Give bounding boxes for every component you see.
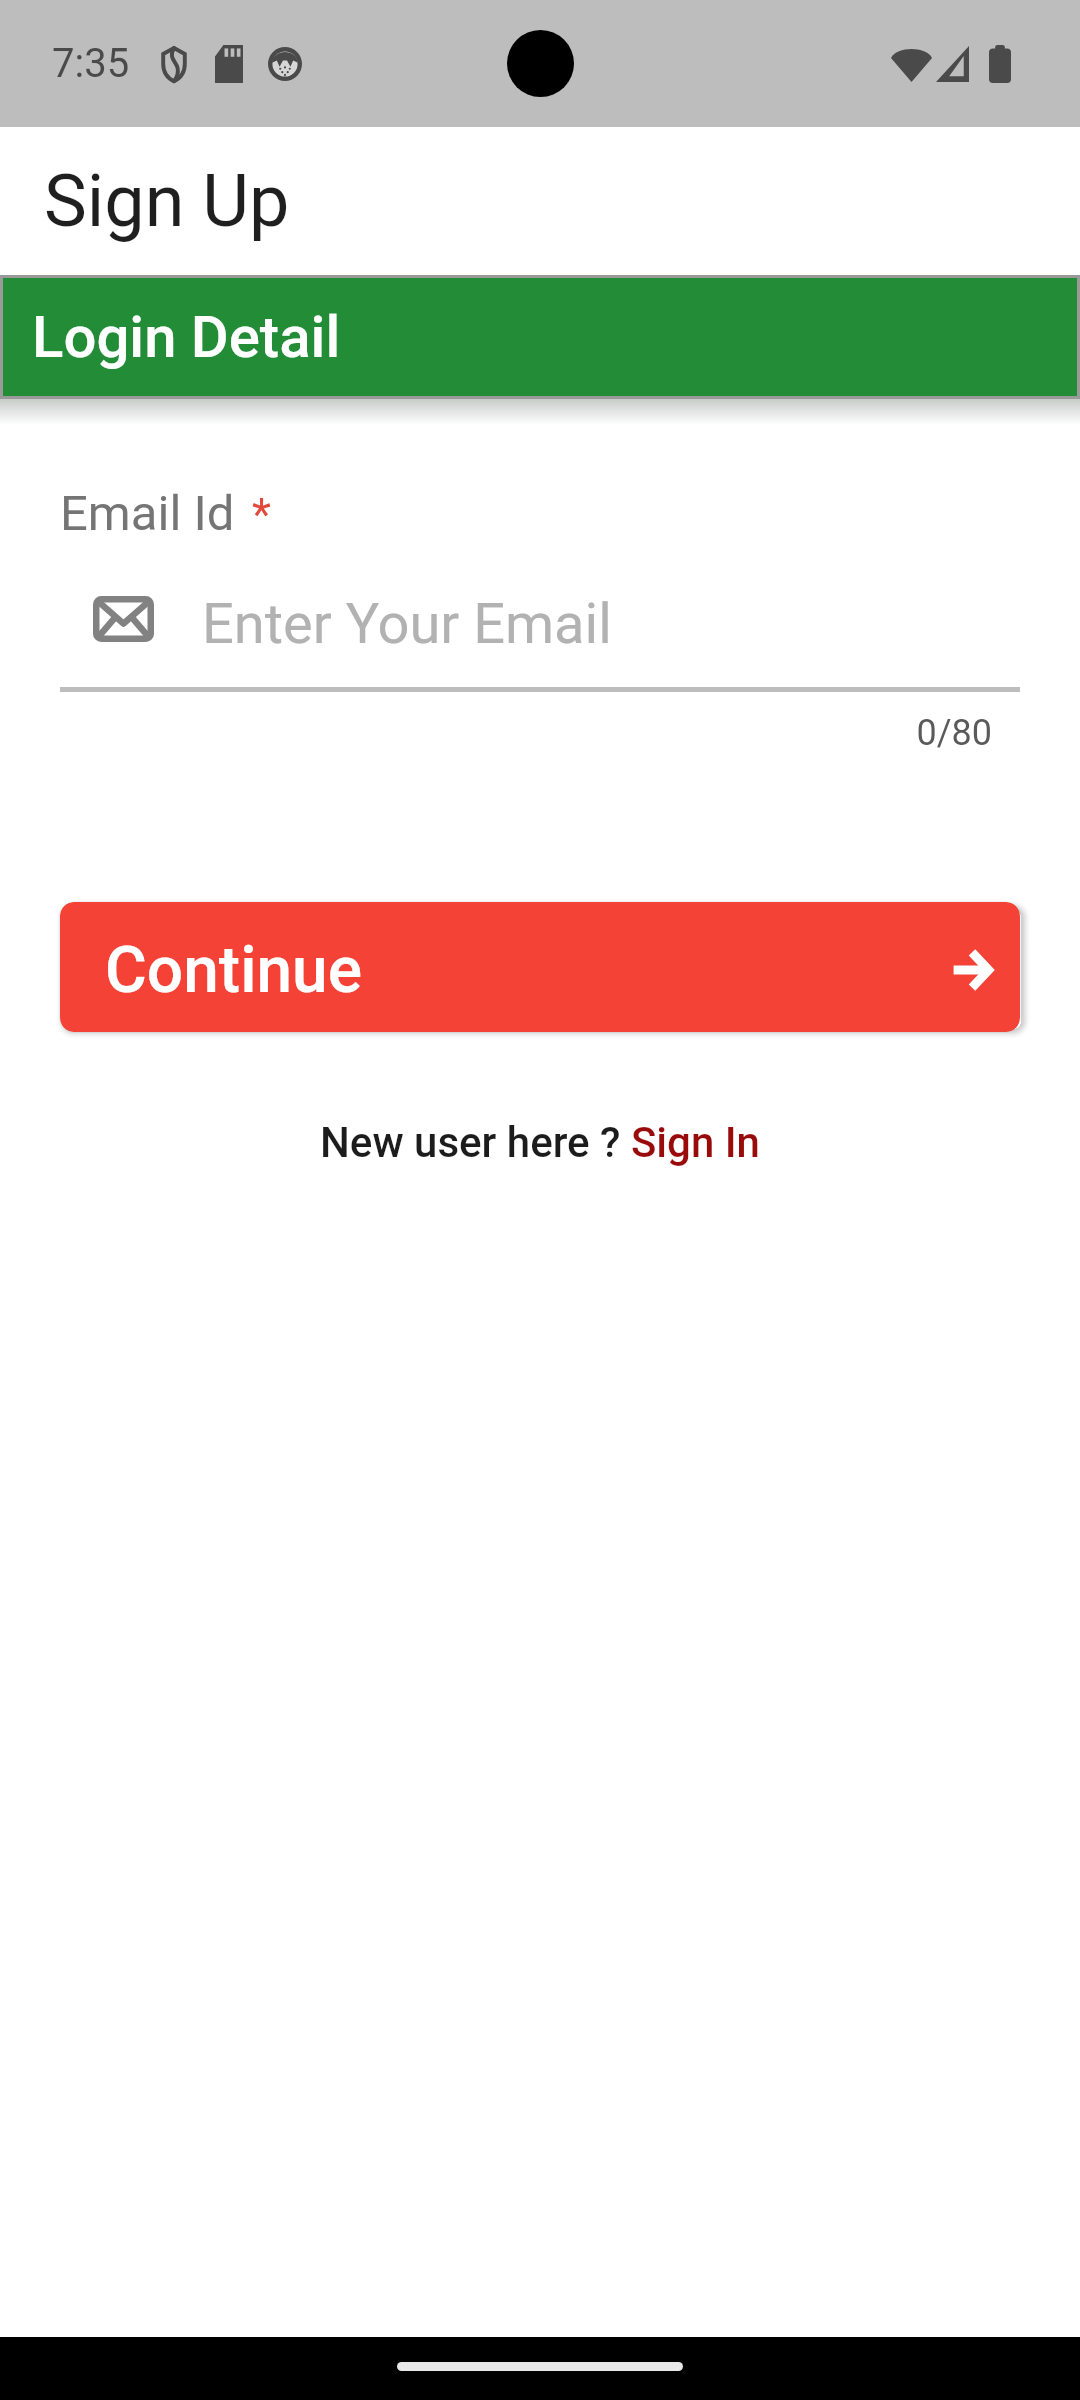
staticText: Continue <box>105 933 362 1008</box>
staticText: 0/80 <box>60 712 992 754</box>
staticText: Enter Your Email <box>202 591 612 657</box>
staticText: Sign Up <box>44 159 290 243</box>
staticText: Email Id <box>60 485 235 542</box>
staticText: * <box>252 489 271 541</box>
button[interactable]: Sign In <box>631 1118 760 1167</box>
button[interactable]: Email <box>60 578 1020 670</box>
staticText: New user here ? <box>320 1118 631 1167</box>
staticText: 7:35 <box>52 40 130 87</box>
button[interactable]: Continue <box>60 902 1020 1032</box>
other: Email <box>93 596 154 642</box>
staticText: Login Detail <box>32 303 341 371</box>
other: Continue <box>950 947 994 993</box>
button[interactable]: Login Detail <box>3 278 1077 396</box>
